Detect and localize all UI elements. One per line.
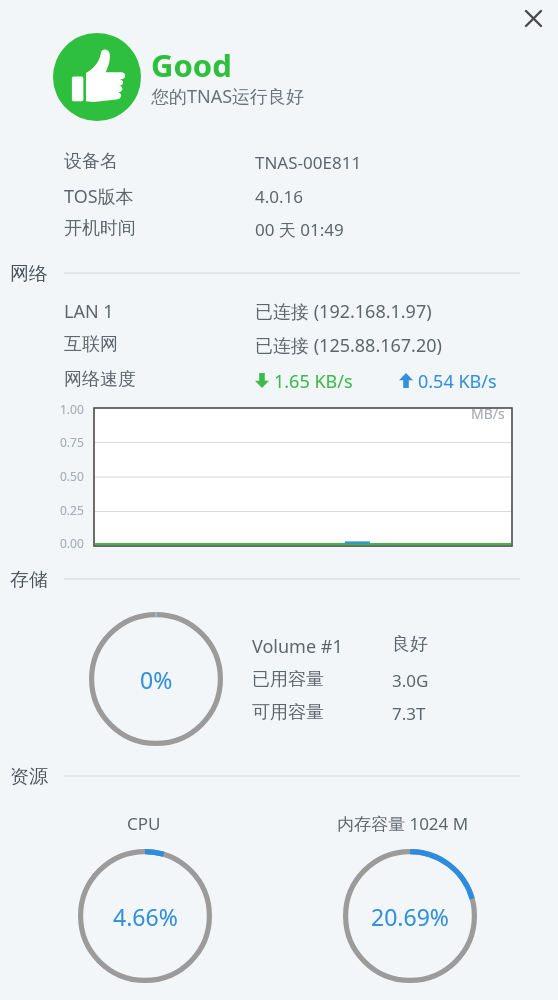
staticText: 已连接 (125.88.167.20) xyxy=(255,333,442,358)
staticText: 4.0.16 xyxy=(255,185,304,208)
staticText: 1.00 xyxy=(60,401,84,417)
staticText: 网络 xyxy=(10,262,48,286)
staticText: 3.0G xyxy=(392,669,429,692)
staticText: Good xyxy=(151,44,232,86)
staticText: 开机时间 xyxy=(64,217,136,240)
staticText: 7.3T xyxy=(392,702,426,725)
staticText: TOS版本 xyxy=(64,184,134,209)
staticText: 良好 xyxy=(392,633,428,656)
staticText: 00 天 01:49 xyxy=(255,218,344,241)
staticText: 网络速度 xyxy=(64,368,136,391)
staticText: 0.54 KB/s xyxy=(418,369,497,394)
button[interactable]: Close xyxy=(509,0,558,37)
staticText: 内存容量 1024 M xyxy=(337,812,469,835)
staticText: 您的TNAS运行良好 xyxy=(151,84,305,109)
staticText: 0% xyxy=(140,664,173,695)
staticText: TNAS-00E811 xyxy=(255,151,362,174)
staticText: 4.66% xyxy=(113,901,178,932)
staticText: 1.65 KB/s xyxy=(274,369,353,394)
staticText: CPU xyxy=(127,812,161,835)
staticText: Volume #1 xyxy=(252,634,343,659)
staticText: 可用容量 xyxy=(252,701,324,724)
staticText: 资源 xyxy=(10,765,48,789)
staticText: LAN 1 xyxy=(64,299,114,324)
staticText: 0.00 xyxy=(60,535,84,551)
staticText: 互联网 xyxy=(64,333,118,356)
staticText: 20.69% xyxy=(371,901,449,932)
staticText: 存储 xyxy=(10,568,48,592)
staticText: 0.50 xyxy=(60,468,84,484)
staticText: 0.25 xyxy=(60,502,84,518)
staticText: 设备名 xyxy=(64,150,118,173)
staticText: MB/s xyxy=(471,404,505,423)
staticText: 已连接 (192.168.1.97) xyxy=(255,299,432,324)
staticText: 0.75 xyxy=(60,434,84,450)
staticText: 已用容量 xyxy=(252,668,324,691)
